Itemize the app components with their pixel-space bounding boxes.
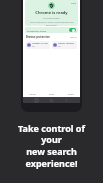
other: Back bbox=[65, 99, 68, 102]
button[interactable]: Network Access bbox=[26, 41, 50, 49]
button[interactable]: More bbox=[61, 90, 80, 97]
other: Home bbox=[50, 99, 53, 102]
staticText: More bbox=[68, 92, 74, 95]
staticText: Protection active bbox=[27, 29, 69, 32]
staticText: Chrome is ready bbox=[35, 10, 68, 15]
button[interactable]: Home bbox=[23, 90, 42, 97]
staticText: FREE bbox=[71, 2, 76, 5]
button[interactable]: Tracker removal bbox=[52, 41, 77, 49]
button[interactable]: See all bbox=[70, 36, 77, 39]
other: Protection status bbox=[48, 2, 55, 9]
staticText: On bbox=[58, 45, 61, 48]
staticText: Your protection is active. Keep browsing… bbox=[29, 21, 74, 26]
staticText: Network Access bbox=[32, 42, 48, 45]
button[interactable]: FREE bbox=[25, 0, 78, 26]
staticText: Scan bbox=[49, 92, 55, 95]
other: Recents bbox=[35, 99, 38, 102]
staticText: Take control of your new search experien… bbox=[8, 122, 95, 170]
button[interactable]: Protection active bbox=[25, 27, 78, 33]
button[interactable]: Scan bbox=[42, 90, 61, 97]
staticText: Home bbox=[29, 92, 36, 95]
staticText: Browse protection bbox=[26, 35, 70, 39]
staticText: Tracker removal bbox=[58, 42, 75, 45]
staticText: On bbox=[32, 45, 35, 48]
staticText: for Experience bbox=[43, 16, 60, 19]
